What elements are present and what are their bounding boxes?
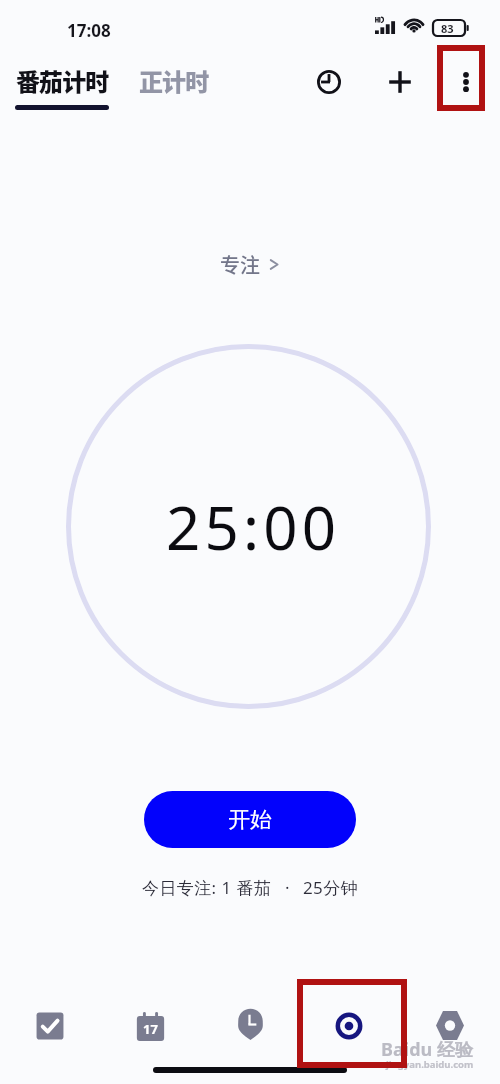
- staticText: ·: [285, 876, 290, 899]
- button[interactable]: 开始: [144, 791, 356, 848]
- staticText: 专注: [220, 250, 260, 279]
- staticText: 83: [441, 21, 454, 36]
- staticText: 开始: [228, 806, 272, 834]
- staticText: jingyan.baidu.com: [386, 1058, 474, 1071]
- staticText: 番茄计时: [16, 63, 109, 98]
- staticText: 17:08: [67, 19, 111, 42]
- button[interactable]: 正计时: [131, 59, 217, 102]
- button[interactable]: Calendar: [119, 995, 181, 1057]
- button[interactable]: More options: [442, 58, 490, 106]
- button[interactable]: History: [305, 58, 353, 106]
- button[interactable]: Add: [376, 58, 424, 106]
- button[interactable]: 专注: [210, 244, 290, 285]
- button[interactable]: Pomodoro: [318, 995, 380, 1057]
- staticText: 25:00: [166, 486, 341, 568]
- button[interactable]: Tasks: [19, 995, 81, 1057]
- staticText: 今日专注: 1 番茄: [142, 876, 272, 899]
- staticText: 17: [143, 1020, 158, 1038]
- button[interactable]: 番茄计时: [7, 59, 117, 114]
- button[interactable]: Habits: [219, 995, 281, 1057]
- staticText: 正计时: [139, 63, 209, 98]
- staticText: 25分钟: [303, 876, 359, 899]
- button[interactable]: Settings: [419, 995, 481, 1057]
- staticText: Baidu 经验: [381, 1037, 473, 1062]
